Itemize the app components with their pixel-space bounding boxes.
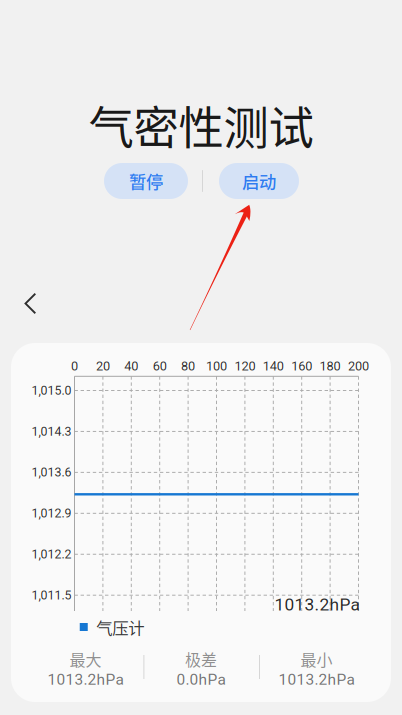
- button[interactable]: Back: [8, 282, 52, 326]
- staticText: 120: [234, 358, 255, 373]
- button[interactable]: 暂停: [104, 163, 188, 199]
- staticText: 暂停: [129, 168, 163, 194]
- staticText: 80: [181, 358, 195, 373]
- staticText: 1013.2hPa: [47, 670, 123, 689]
- staticText: 60: [153, 358, 167, 373]
- staticText: 140: [263, 358, 284, 373]
- staticText: 极差: [185, 647, 217, 671]
- staticText: 1,012.9: [31, 506, 71, 521]
- staticText: 160: [291, 358, 312, 373]
- staticText: 20: [96, 358, 110, 373]
- staticText: 1,011.5: [31, 588, 71, 602]
- staticText: 180: [320, 358, 341, 373]
- staticText: 1,012.2: [31, 547, 71, 561]
- staticText: 启动: [242, 168, 276, 194]
- staticText: 0: [71, 358, 78, 373]
- staticText: 0.0hPa: [176, 670, 225, 689]
- staticText: 200: [348, 358, 369, 373]
- staticText: 气密性测试: [88, 92, 313, 158]
- button[interactable]: 启动: [219, 163, 299, 199]
- staticText: 气压计: [96, 615, 144, 639]
- staticText: 1,013.6: [31, 465, 71, 480]
- staticText: 最小: [300, 647, 332, 671]
- staticText: 100: [206, 358, 227, 373]
- staticText: 1013.2hPa: [274, 594, 359, 615]
- staticText: 1013.2hPa: [278, 670, 354, 689]
- staticText: 1,014.3: [31, 424, 71, 439]
- staticText: 40: [124, 358, 138, 373]
- staticText: 1,015.0: [31, 383, 71, 398]
- staticText: 最大: [69, 647, 101, 671]
